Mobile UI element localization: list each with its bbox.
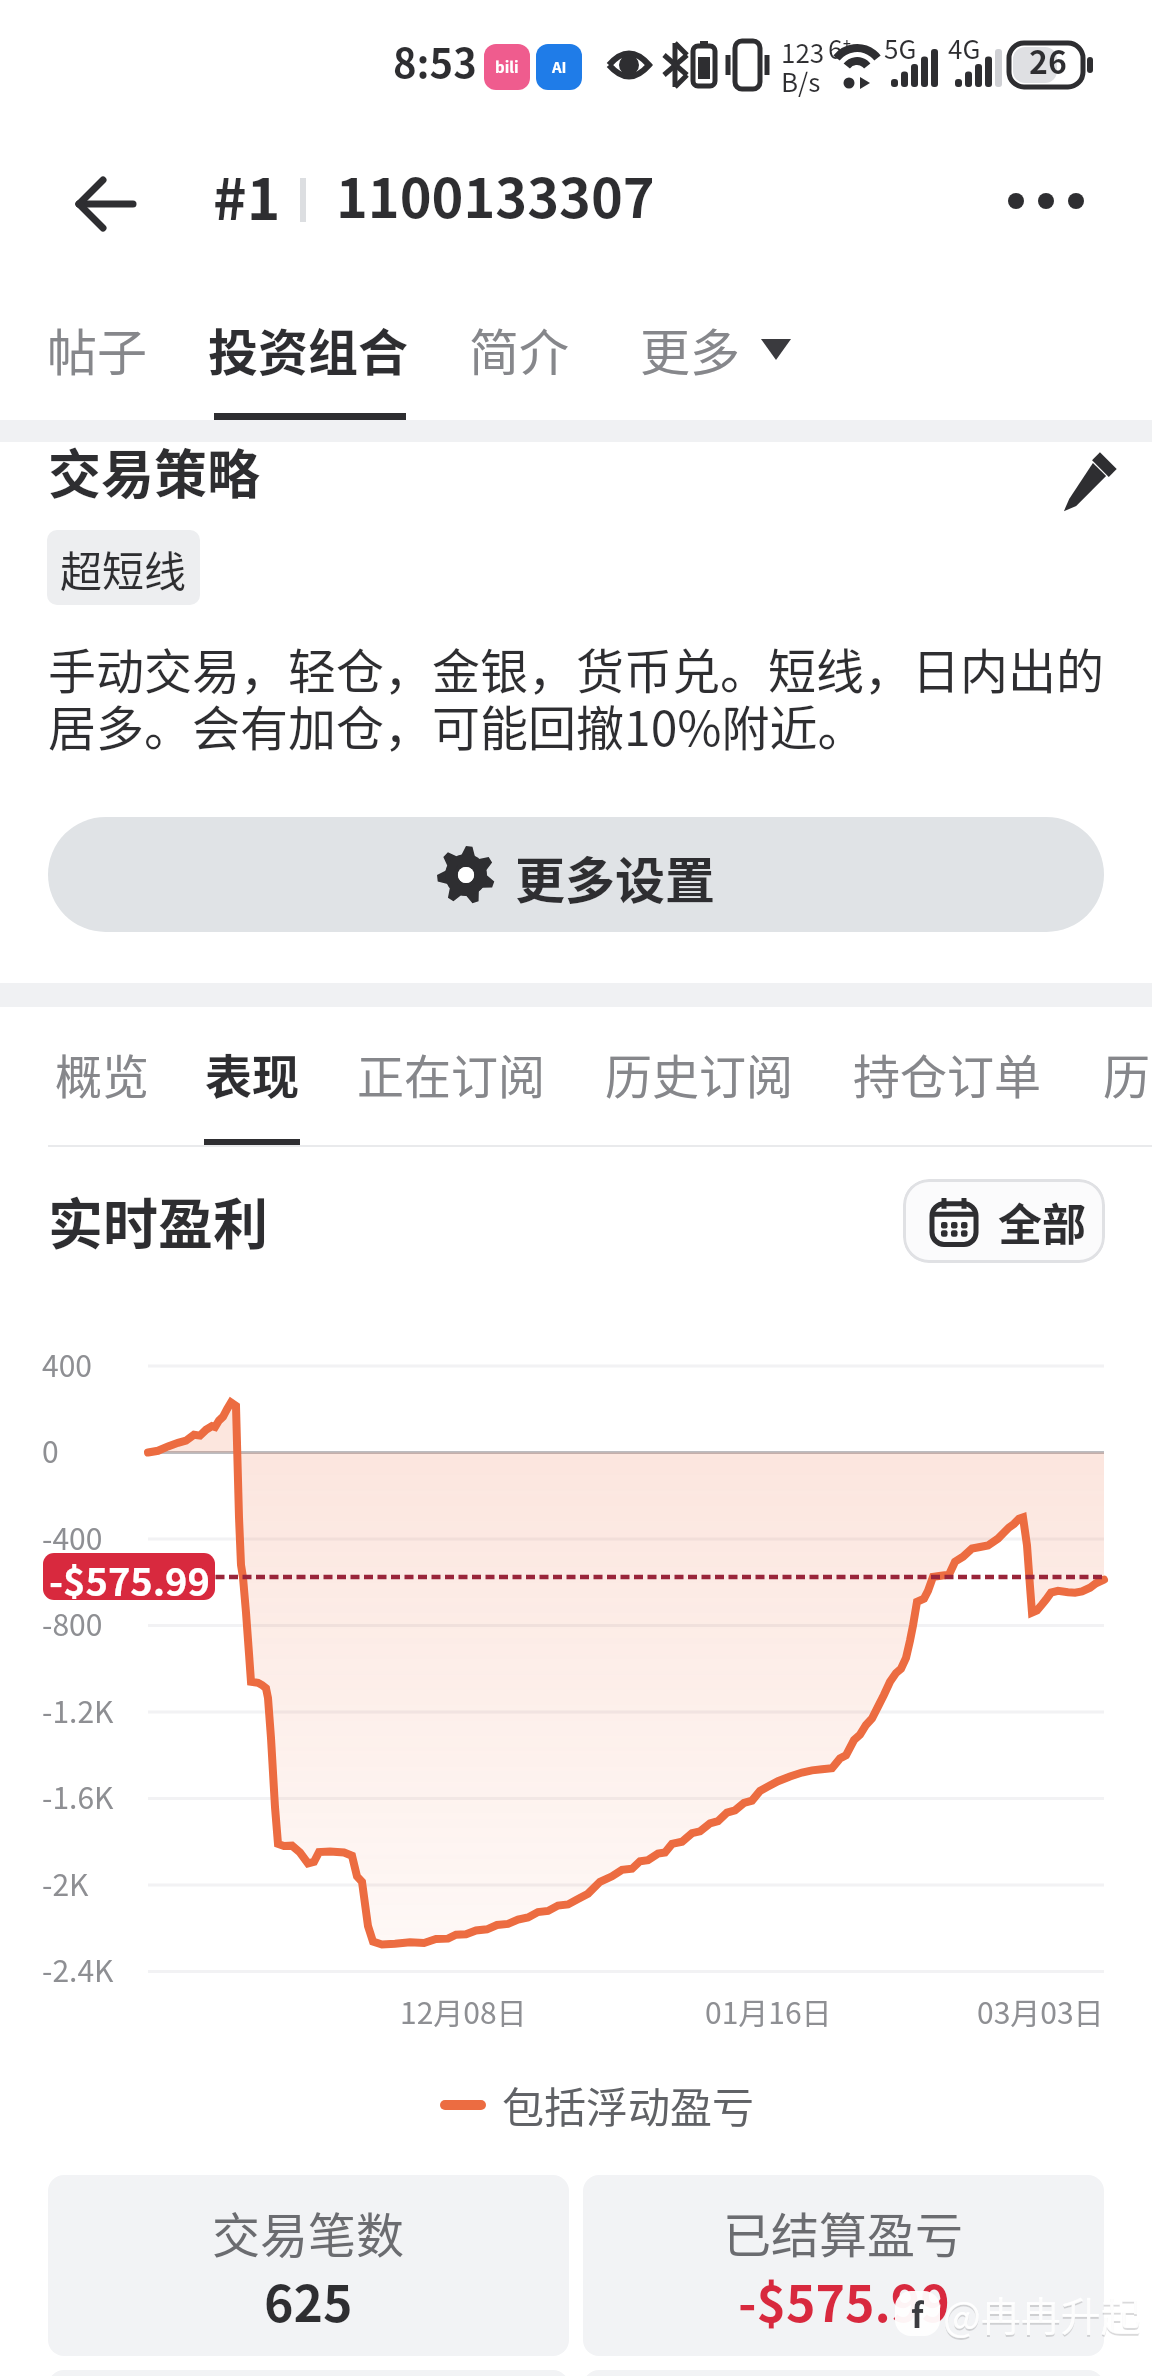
staticText: 手动交易，轻仓，金银，货币兑。短线，日内出的居多。会有加仓，可能回撤10%附近。 [48,633,1112,760]
staticText: 帖子 [47,313,147,385]
button[interactable]: 全部 [903,1179,1105,1263]
button[interactable]: 持仓订单 [843,1027,1051,1146]
staticText: #1 [213,154,281,237]
staticText: @冉冉升起 [943,2287,1141,2345]
button[interactable]: Edit [1041,440,1129,528]
staticText: -800 [42,1601,103,1644]
staticText: bili [495,56,519,78]
staticText: 交易策略 [48,433,260,510]
button[interactable]: 更多设置 [48,817,1104,932]
button[interactable]: 投资组合 [198,299,418,420]
staticText: 全部 [998,1190,1086,1254]
button[interactable]: 已结算盈亏 [583,2175,1104,2356]
staticText: 26 [1029,37,1067,83]
button[interactable]: 帖子 [41,299,152,420]
staticText: -1.6K [42,1774,114,1817]
staticText: 01月16日 [705,1989,832,2032]
staticText: -2.4K [42,1947,114,1990]
staticText: -2K [42,1861,89,1904]
button[interactable]: 简介 [463,299,574,420]
button[interactable]: 更多 [640,313,791,385]
staticText: -$575.99 [738,2264,950,2336]
staticText: 12月08日 [400,1989,527,2032]
staticText: 历史订阅 [605,1039,793,1107]
staticText: 超短线 [60,538,187,599]
staticText: 概览 [55,1039,149,1107]
button[interactable]: 历史 [1093,1027,1152,1146]
button[interactable]: 表现 [196,1027,307,1146]
button[interactable]: 交易笔数 [48,2175,569,2356]
staticText: 已结算盈亏 [723,2197,964,2267]
staticText: 持仓订单 [853,1039,1041,1107]
staticText: 更多 [640,313,740,385]
button[interactable]: 概览 [45,1027,159,1146]
button[interactable]: Back [56,156,152,252]
staticText: 正在订阅 [357,1039,545,1107]
staticText: 表现 [205,1039,299,1107]
staticText: 历史 [1103,1039,1152,1107]
staticText: AI [552,56,567,78]
staticText: 5G [884,29,917,67]
staticText: 包括浮动盈亏 [502,2074,755,2135]
staticText: 4G [948,29,981,67]
staticText: 更多设置 [515,841,715,913]
staticText: 简介 [469,313,569,385]
staticText: 123 [781,33,825,71]
staticText: 625 [264,2264,353,2336]
staticText: 交易笔数 [212,2197,405,2267]
staticText: 投资组合 [208,313,408,385]
staticText: B/s [781,62,821,100]
staticText: -400 [42,1515,103,1558]
staticText: -$575.99 [49,1553,210,1599]
button[interactable]: 正在订阅 [347,1027,555,1146]
staticText: 6⁺ [828,29,852,67]
staticText: 400 [42,1342,92,1385]
button[interactable]: 超短线 [47,530,200,605]
button[interactable]: 历史订阅 [595,1027,803,1146]
staticText: 实时盈利 [48,1180,269,1260]
staticText: @冉冉升起 [943,2285,1141,2343]
staticText: -1.2K [42,1688,114,1731]
button[interactable]: More options [988,153,1104,249]
staticText: 0 [42,1428,59,1471]
staticText: f [911,2291,924,2334]
staticText: 8:53 [393,32,477,90]
staticText: 1100133307 [336,155,655,233]
staticText: 03月03日 [977,1989,1104,2032]
